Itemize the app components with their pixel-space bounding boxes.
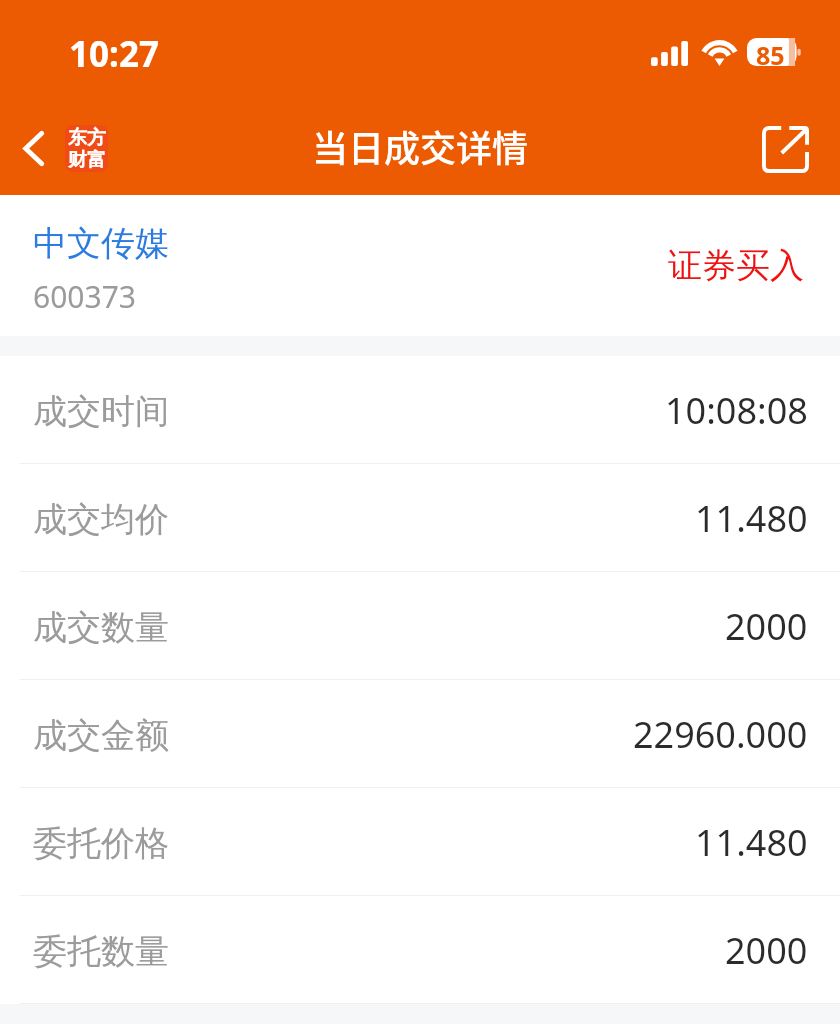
staticText: 2000	[725, 926, 808, 975]
button[interactable]: Share	[754, 118, 817, 181]
staticText: 成交均价	[33, 498, 169, 541]
staticText: 委托数量	[33, 930, 169, 973]
button[interactable]: 委托价格	[0, 788, 840, 896]
staticText: 22960.000	[633, 710, 808, 759]
staticText: 证券买入	[668, 244, 804, 287]
staticText: 85	[756, 38, 785, 66]
staticText: 东方 财富	[68, 126, 106, 171]
staticText: 10:27	[69, 30, 159, 78]
staticText: 成交金额	[33, 714, 169, 757]
staticText: 成交时间	[33, 390, 169, 433]
button[interactable]: 成交数量	[0, 572, 840, 680]
button[interactable]: 委托数量	[0, 896, 840, 1004]
button[interactable]: 证券买入	[652, 236, 840, 295]
button[interactable]: Back	[10, 115, 120, 182]
staticText: 11.480	[695, 818, 808, 867]
staticText: 中文传媒	[33, 222, 169, 265]
button[interactable]: 成交均价	[0, 464, 840, 572]
staticText: 600373	[33, 276, 136, 317]
staticText: 10:08:08	[665, 386, 808, 435]
staticText: 委托价格	[33, 822, 169, 865]
staticText: 11.480	[695, 494, 808, 543]
button[interactable]: 成交金额	[0, 680, 840, 788]
staticText: 当日成交详情	[312, 120, 529, 172]
button[interactable]: 中文传媒	[0, 212, 185, 319]
staticText: 成交数量	[33, 606, 169, 649]
button[interactable]: 成交时间	[0, 356, 840, 464]
staticText: 2000	[725, 602, 808, 651]
